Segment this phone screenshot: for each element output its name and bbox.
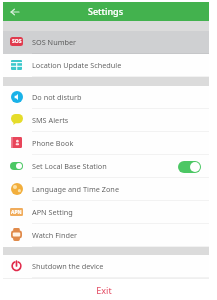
button[interactable]: Set Local Base Station	[3, 155, 209, 178]
staticText: Location Update Schedule	[32, 60, 122, 70]
staticText: Language and Time Zone	[32, 184, 119, 194]
button[interactable]: Phone Book	[3, 132, 209, 155]
button[interactable]: SMS Alerts	[3, 109, 209, 132]
staticText: Shutdown the device	[32, 261, 104, 271]
button[interactable]: Do not disturb	[3, 86, 209, 109]
staticText: APN Setting	[32, 207, 73, 217]
staticText: APN	[11, 209, 22, 216]
staticText: Phone Book	[32, 138, 74, 148]
button[interactable]: Shutdown the device	[3, 255, 209, 278]
button[interactable]: Watch Finder	[3, 224, 209, 247]
staticText: Watch Finder	[32, 230, 78, 240]
staticText: SOS Number	[32, 37, 77, 47]
staticText: SOS	[12, 38, 22, 45]
staticText: Do not disturb	[32, 92, 82, 102]
staticText: Set Local Base Station	[32, 161, 107, 171]
button[interactable]: Exit	[3, 285, 209, 297]
button[interactable]: APN	[3, 201, 209, 224]
button[interactable]: SOS	[3, 31, 209, 54]
staticText: Settings	[88, 5, 124, 17]
button[interactable]: Language and Time Zone	[3, 178, 209, 201]
button[interactable]: Back	[3, 2, 25, 21]
button[interactable]: Location Update Schedule	[3, 54, 209, 77]
button[interactable]	[178, 161, 201, 173]
staticText: SMS Alerts	[32, 115, 69, 125]
